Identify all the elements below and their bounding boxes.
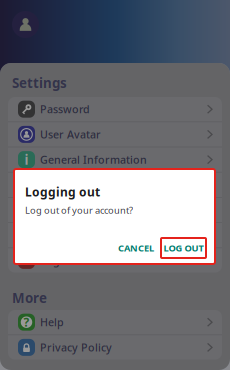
button[interactable]: Password [8, 97, 222, 121]
staticText: i [24, 151, 28, 168]
staticText: Settings [12, 74, 67, 92]
staticText: Privacy Policy [40, 340, 112, 354]
staticText: General Information [40, 152, 147, 167]
button[interactable]: CANCEL [117, 238, 155, 258]
button[interactable]: i [8, 147, 222, 172]
staticText: More [12, 289, 47, 307]
staticText: User Avatar [40, 127, 101, 141]
staticText: Log Out [40, 253, 82, 267]
button[interactable]: Appearance [8, 198, 222, 222]
button[interactable]: ? [8, 310, 222, 334]
button[interactable]: Log Out [8, 248, 222, 273]
staticText: Logging out [25, 184, 100, 200]
staticText: Password [40, 102, 90, 116]
button[interactable]: Profile [12, 11, 39, 38]
staticText: Notifications [40, 178, 106, 192]
staticText: Help [40, 315, 64, 329]
button[interactable]: User Avatar [8, 122, 222, 147]
button[interactable]: Notifications [8, 173, 222, 197]
button[interactable]: LOG OUT [161, 238, 206, 258]
staticText: CANCEL [118, 242, 154, 254]
button[interactable]: Privacy Policy [8, 335, 222, 360]
staticText: Log out of your account? [25, 204, 133, 216]
staticText: ? [23, 314, 29, 330]
staticText: Appearance [40, 203, 101, 217]
staticText: LOG OUT [163, 242, 203, 254]
button[interactable]: Language [8, 223, 222, 247]
